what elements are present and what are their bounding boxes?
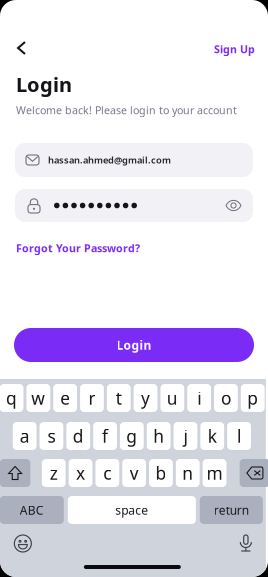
staticText: Login bbox=[16, 71, 72, 98]
button[interactable]: Sign Up bbox=[202, 35, 268, 63]
button[interactable]: f bbox=[93, 422, 117, 450]
staticText: c bbox=[103, 461, 111, 484]
button[interactable]: c bbox=[95, 459, 119, 487]
button[interactable]: n bbox=[176, 459, 200, 487]
button[interactable]: ABC bbox=[0, 496, 64, 524]
staticText: a bbox=[20, 424, 30, 447]
button[interactable]: o bbox=[214, 384, 238, 412]
button[interactable]: z bbox=[42, 459, 66, 487]
staticText: x bbox=[76, 461, 85, 484]
staticText: l bbox=[237, 424, 241, 447]
staticText: o bbox=[221, 386, 231, 409]
button[interactable]: t bbox=[107, 384, 131, 412]
staticText: s bbox=[47, 424, 55, 447]
button[interactable]: j bbox=[174, 422, 197, 450]
button[interactable]: w bbox=[26, 384, 50, 412]
staticText: b bbox=[155, 461, 166, 484]
button[interactable]: Back bbox=[6, 35, 37, 61]
staticText: Sign Up bbox=[214, 42, 255, 56]
staticText: ABC bbox=[20, 502, 44, 518]
staticText: y bbox=[141, 386, 150, 409]
staticText: r bbox=[88, 386, 95, 409]
staticText: Welcome back! Please login to your accou… bbox=[16, 103, 237, 117]
button[interactable]: p bbox=[241, 384, 265, 412]
staticText: z bbox=[50, 461, 58, 484]
staticText: d bbox=[73, 424, 84, 447]
staticText: w bbox=[31, 386, 45, 409]
button[interactable]: q bbox=[0, 384, 23, 412]
staticText: i bbox=[197, 386, 201, 409]
button[interactable]: s bbox=[39, 422, 63, 450]
button[interactable]: Forgot Your Password? bbox=[8, 237, 148, 259]
staticText: p bbox=[247, 386, 258, 409]
staticText: e bbox=[60, 386, 70, 409]
staticText: Forgot Your Password? bbox=[16, 241, 140, 255]
button[interactable]: m bbox=[203, 459, 226, 487]
button[interactable]: Show password bbox=[220, 190, 247, 221]
button[interactable]: Login bbox=[14, 328, 254, 362]
button[interactable]: v bbox=[122, 459, 146, 487]
staticText: j bbox=[183, 424, 187, 447]
button[interactable]: a bbox=[13, 422, 36, 450]
button[interactable]: e bbox=[53, 384, 77, 412]
staticText: space bbox=[115, 502, 148, 518]
staticText: u bbox=[167, 386, 178, 409]
button[interactable]: i bbox=[187, 384, 211, 412]
button[interactable]: d bbox=[66, 422, 90, 450]
staticText: hassan.ahmed@gmail.com bbox=[48, 154, 171, 166]
button[interactable]: Shift bbox=[0, 459, 30, 487]
button[interactable]: l bbox=[227, 422, 251, 450]
staticText: Login bbox=[116, 337, 151, 353]
staticText: k bbox=[208, 424, 217, 447]
button[interactable]: b bbox=[149, 459, 173, 487]
button[interactable]: g bbox=[120, 422, 144, 450]
button[interactable]: Dictate bbox=[234, 531, 258, 555]
button[interactable]: Emoji bbox=[8, 531, 37, 556]
staticText: t bbox=[116, 386, 122, 409]
button[interactable]: r bbox=[80, 384, 104, 412]
button[interactable]: x bbox=[69, 459, 92, 487]
staticText: g bbox=[126, 424, 137, 447]
button[interactable]: k bbox=[200, 422, 224, 450]
staticText: n bbox=[182, 461, 193, 484]
staticText: m bbox=[207, 461, 223, 484]
button[interactable]: y bbox=[134, 384, 157, 412]
button[interactable]: return bbox=[200, 496, 263, 524]
staticText: f bbox=[102, 424, 108, 447]
staticText: v bbox=[130, 461, 139, 484]
button[interactable]: u bbox=[160, 384, 184, 412]
staticText: q bbox=[6, 386, 17, 409]
staticText: h bbox=[153, 424, 164, 447]
button[interactable]: Delete bbox=[240, 459, 268, 487]
button[interactable]: space bbox=[68, 496, 196, 524]
button[interactable]: h bbox=[147, 422, 171, 450]
staticText: return bbox=[214, 502, 249, 518]
